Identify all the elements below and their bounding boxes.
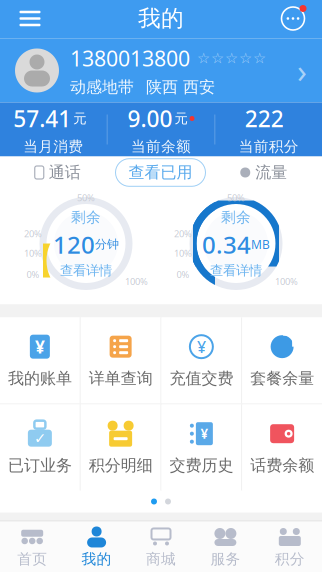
- button[interactable]: ¥: [0, 317, 80, 403]
- button[interactable]: 1380013800: [0, 38, 322, 102]
- staticText: 0.34: [202, 228, 251, 260]
- staticText: 服务: [210, 550, 240, 568]
- staticText: 222: [245, 103, 284, 133]
- staticText: 100%: [125, 275, 148, 287]
- staticText: 交费历史: [169, 456, 233, 475]
- staticText: ›: [297, 49, 307, 92]
- staticText: 剩余: [221, 208, 251, 226]
- staticText: 0%: [26, 268, 39, 281]
- staticText: 20%: [24, 227, 42, 240]
- staticText: 首页: [17, 550, 47, 568]
- button[interactable]: ¥: [161, 404, 241, 490]
- staticText: ☆: [239, 50, 252, 66]
- staticText: 57.41: [13, 103, 71, 133]
- staticText: 套餐余量: [250, 369, 314, 388]
- staticText: 商城: [146, 550, 176, 568]
- staticText: 查看详情: [60, 262, 112, 279]
- staticText: 已订业务: [8, 456, 72, 475]
- staticText: ☆: [253, 50, 266, 66]
- staticText: 我的账单: [8, 369, 72, 388]
- staticText: 动感地带: [70, 77, 134, 97]
- staticText: 我的: [82, 550, 112, 568]
- button[interactable]: 首页: [0, 521, 64, 572]
- staticText: ¥: [200, 425, 208, 442]
- button[interactable]: 服务: [193, 521, 258, 572]
- staticText: 陕西 西安: [146, 77, 215, 97]
- staticText: 50%: [227, 191, 245, 204]
- staticText: ¥: [197, 336, 206, 357]
- button[interactable]: ✓: [0, 404, 80, 490]
- staticText: 积分明细: [89, 456, 153, 475]
- staticText: 1380013800: [70, 44, 190, 72]
- button[interactable]: 剩余: [172, 190, 300, 296]
- staticText: 10%: [174, 247, 192, 259]
- staticText: MB: [251, 236, 270, 252]
- staticText: ☆: [211, 50, 224, 66]
- staticText: 积分: [275, 550, 305, 568]
- staticText: 50%: [77, 191, 95, 204]
- staticText: 当月消费: [23, 137, 83, 155]
- staticText: ☆: [225, 50, 238, 66]
- staticText: 流量: [255, 163, 287, 182]
- staticText: 当前积分: [239, 137, 299, 155]
- button[interactable]: 积分明细: [81, 404, 161, 490]
- staticText: 元: [73, 110, 86, 127]
- button[interactable]: 积分: [258, 521, 322, 572]
- staticText: 100%: [275, 275, 298, 287]
- staticText: 详单查询: [89, 369, 153, 388]
- staticText: ☆: [197, 50, 210, 66]
- staticText: 充值交费: [169, 369, 233, 388]
- staticText: 9.00: [127, 103, 172, 133]
- staticText: 剩余: [71, 208, 101, 226]
- button[interactable]: 商城: [129, 521, 193, 572]
- staticText: 话费余额: [250, 456, 314, 475]
- button[interactable]: 9.00: [108, 102, 214, 156]
- staticText: 分钟: [95, 237, 119, 252]
- staticText: 0%: [176, 268, 189, 281]
- button[interactable]: 消息: [278, 3, 308, 33]
- button[interactable]: 我的: [64, 521, 129, 572]
- staticText: 元: [174, 110, 187, 127]
- staticText: 20%: [174, 227, 192, 240]
- button[interactable]: 详单查询: [81, 317, 161, 403]
- button[interactable]: ¥: [161, 317, 241, 403]
- staticText: 查看详情: [210, 262, 262, 279]
- button[interactable]: 查看已用: [115, 159, 205, 186]
- button[interactable]: 222: [215, 102, 322, 156]
- button[interactable]: 话费余额: [242, 404, 322, 490]
- staticText: 查看已用: [128, 163, 192, 182]
- staticText: 当前余额: [131, 137, 191, 155]
- staticText: ¥: [35, 335, 45, 358]
- button[interactable]: 57.41: [0, 102, 107, 156]
- button[interactable]: 套餐余量: [242, 317, 322, 403]
- staticText: 120: [53, 228, 95, 260]
- button[interactable]: 菜单: [14, 2, 46, 34]
- staticText: ✓: [34, 430, 46, 446]
- staticText: 10%: [24, 247, 42, 259]
- staticText: 通话: [49, 163, 81, 182]
- staticText: 我的: [138, 5, 184, 32]
- button[interactable]: 剩余: [22, 190, 150, 296]
